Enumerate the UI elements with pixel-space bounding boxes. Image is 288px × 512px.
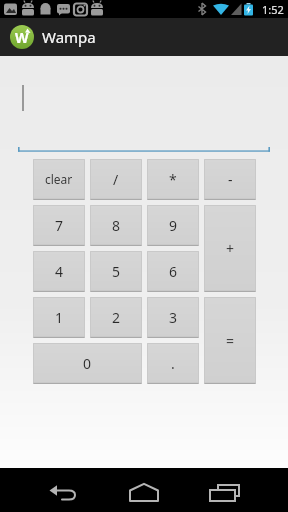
staticText: . <box>171 354 175 373</box>
button[interactable]: = <box>204 297 256 383</box>
button[interactable]: 1 <box>33 297 85 337</box>
button[interactable]: * <box>147 159 199 199</box>
staticText: 2 <box>112 308 121 327</box>
staticText: clear <box>45 171 73 187</box>
button[interactable] <box>40 484 84 506</box>
staticText: 7 <box>55 216 64 235</box>
staticText: = <box>226 331 235 350</box>
staticText: 1 <box>55 308 64 327</box>
staticText: 8 <box>112 216 121 235</box>
button[interactable] <box>0 56 288 468</box>
button[interactable]: 4 <box>33 251 85 291</box>
button[interactable]: 0 <box>33 343 142 383</box>
staticText: 3 <box>169 308 178 327</box>
staticText: 6 <box>169 262 178 281</box>
staticText: 4 <box>55 262 64 281</box>
button[interactable]: - <box>204 159 256 199</box>
staticText: 9 <box>169 216 178 235</box>
button[interactable]: 9 <box>147 205 199 245</box>
staticText: Wampa <box>42 27 96 47</box>
button[interactable]: clear <box>33 159 85 199</box>
staticText: / <box>113 170 119 189</box>
button[interactable] <box>202 479 246 503</box>
button[interactable]: . <box>147 343 199 383</box>
button[interactable]: 3 <box>147 297 199 337</box>
button[interactable]: / <box>90 159 142 199</box>
button[interactable]: + <box>204 205 256 291</box>
button[interactable]: 6 <box>147 251 199 291</box>
staticText: W <box>15 28 29 47</box>
staticText: 1:52 <box>262 2 284 17</box>
button[interactable] <box>122 481 166 505</box>
button[interactable]: 8 <box>90 205 142 245</box>
staticText: 0 <box>83 354 92 373</box>
button[interactable]: 5 <box>90 251 142 291</box>
staticText: - <box>228 170 233 189</box>
button[interactable]: 7 <box>33 205 85 245</box>
button[interactable]: 2 <box>90 297 142 337</box>
staticText: 5 <box>112 262 121 281</box>
staticText: + <box>226 239 235 258</box>
staticText: * <box>169 170 177 189</box>
